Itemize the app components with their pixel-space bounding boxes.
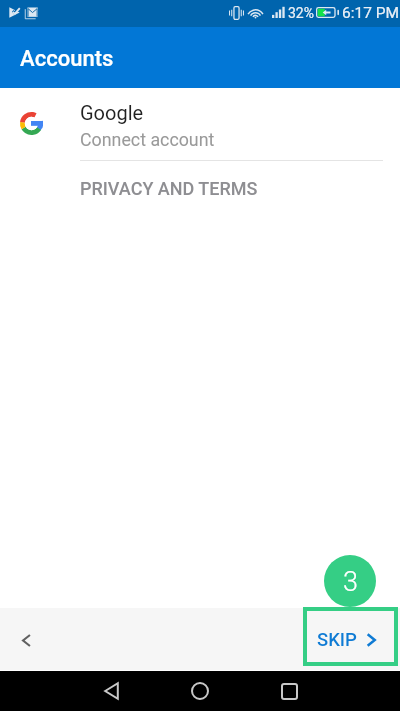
button[interactable]: Google (0, 88, 400, 161)
button[interactable]: Home (178, 671, 222, 711)
button[interactable]: PRIVACY AND TERMS (0, 161, 400, 216)
button[interactable]: Back (89, 671, 133, 711)
staticText: 6:17 PM (342, 4, 400, 22)
button[interactable]: SKIP (303, 607, 398, 666)
staticText: SKIP (317, 629, 357, 651)
button[interactable]: Step 3 (324, 555, 376, 607)
staticText: PRIVACY AND TERMS (80, 178, 258, 199)
button[interactable]: Recent apps (267, 671, 311, 711)
button[interactable]: Back (6, 620, 46, 660)
staticText: Accounts (20, 46, 114, 72)
staticText: Connect account (80, 129, 215, 150)
staticText: 32% (288, 5, 314, 21)
staticText: Google (80, 101, 144, 124)
staticText: 3 (343, 566, 358, 598)
